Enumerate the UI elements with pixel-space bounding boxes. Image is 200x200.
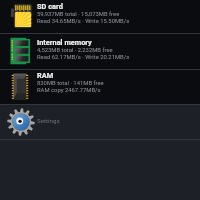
staticText: 4,523MB total · 2,232MB free — [37, 47, 113, 54]
staticText: RAM — [37, 71, 54, 80]
staticText: 59,937MB total · 15,073MB free — [37, 11, 120, 18]
staticText: SD card — [37, 2, 63, 11]
other: Settings — [7, 108, 35, 136]
staticText: Internal memory — [37, 38, 92, 47]
button[interactable]: Internal memory — [0, 33, 200, 69]
button[interactable]: RAM — [0, 69, 200, 104]
staticText: Settings — [37, 117, 60, 124]
staticText: RAM copy 2467.77MB/s — [37, 87, 101, 94]
staticText: Read 34.65MB/s · Write 15.50MB/s — [37, 18, 130, 25]
staticText: 830MB total · 141MB free — [37, 80, 104, 87]
button[interactable]: SD card — [0, 0, 200, 33]
button[interactable]: Settings — [0, 105, 200, 139]
staticText: Read 62.17MB/s · Write 20.21MB/s — [37, 54, 130, 61]
